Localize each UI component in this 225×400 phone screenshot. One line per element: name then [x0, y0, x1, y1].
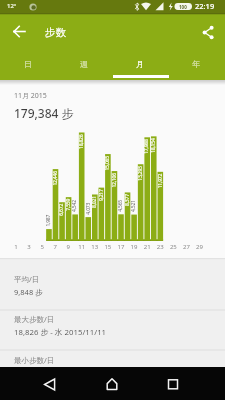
- button[interactable]: 月: [112, 48, 168, 80]
- button[interactable]: [196, 18, 223, 45]
- staticText: 平均/日: [14, 274, 40, 284]
- staticText: 週: [80, 59, 88, 69]
- button[interactable]: [5, 17, 33, 45]
- button[interactable]: [36, 370, 64, 398]
- staticText: 12°: [7, 2, 17, 10]
- staticText: 9,848 步: [14, 287, 43, 297]
- button[interactable]: 週: [56, 48, 112, 80]
- staticText: 18,826 步 - 水 2015/11/11: [14, 327, 107, 338]
- button[interactable]: 年: [168, 48, 224, 80]
- button[interactable]: 日: [0, 48, 56, 80]
- staticText: 年: [192, 59, 200, 69]
- staticText: 100: [179, 4, 187, 10]
- staticText: 179,384 步: [14, 105, 74, 121]
- staticText: 日: [24, 59, 32, 69]
- button[interactable]: [159, 370, 187, 398]
- staticText: 最大步数/日: [14, 314, 55, 324]
- button[interactable]: [98, 370, 126, 398]
- staticText: 步数: [45, 26, 66, 39]
- staticText: 11月 2015: [14, 91, 47, 101]
- staticText: 月: [136, 59, 144, 69]
- staticText: 最小步数/日: [14, 355, 55, 365]
- staticText: 22:19: [195, 1, 215, 11]
